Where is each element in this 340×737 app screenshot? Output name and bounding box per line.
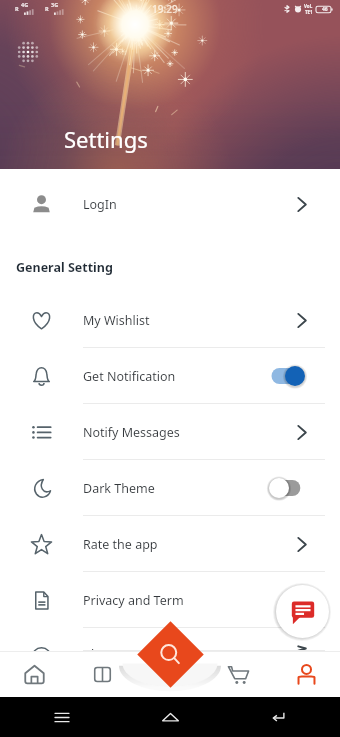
staticText: 4G [21, 1, 29, 8]
button[interactable]: LogIn [0, 176, 340, 232]
button[interactable]: Home [133, 697, 207, 737]
staticText: R [15, 5, 19, 12]
button[interactable]: My Wishlist [0, 292, 340, 348]
button[interactable]: Recents [25, 697, 99, 737]
staticText: 19:29 [152, 2, 178, 16]
staticText: Rate the app [83, 536, 158, 553]
staticText: Privacy and Term [83, 592, 184, 609]
button[interactable]: Search [137, 621, 204, 688]
staticText: General Setting [16, 259, 113, 276]
staticText: VoL [304, 3, 313, 9]
button[interactable]: Messages [276, 585, 329, 638]
staticText: Settings [64, 124, 148, 154]
button[interactable]: Cart [204, 651, 272, 697]
staticText: Dark Theme [83, 480, 155, 497]
staticText: R [45, 5, 49, 12]
button[interactable]: Home [0, 651, 68, 697]
button[interactable]: Apps menu [17, 41, 39, 63]
staticText: LogIn [83, 196, 117, 213]
button[interactable]: Profile [272, 651, 340, 697]
button[interactable]: Notify Messages [0, 404, 340, 460]
staticText: My Wishlist [83, 312, 150, 329]
button[interactable]: Rate the app [0, 516, 340, 572]
button[interactable]: Get Notification [0, 348, 340, 404]
staticText: Notify Messages [83, 424, 180, 441]
button[interactable]: Categories [68, 651, 136, 697]
staticText: About Us [83, 646, 137, 651]
staticText: 3G [51, 1, 59, 8]
staticText: 46 [322, 6, 328, 13]
staticText: Get Notification [83, 368, 176, 385]
button[interactable]: Privacy and Term [0, 572, 340, 628]
button[interactable]: About Us [0, 646, 340, 651]
button[interactable]: Dark Theme [0, 460, 340, 516]
staticText: TE1 [305, 9, 313, 15]
button[interactable]: Back [241, 697, 315, 737]
